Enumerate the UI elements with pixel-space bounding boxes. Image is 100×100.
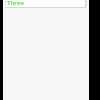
staticText: Three	[7, 0, 25, 7]
button[interactable]: Three	[5, 0, 86, 8]
